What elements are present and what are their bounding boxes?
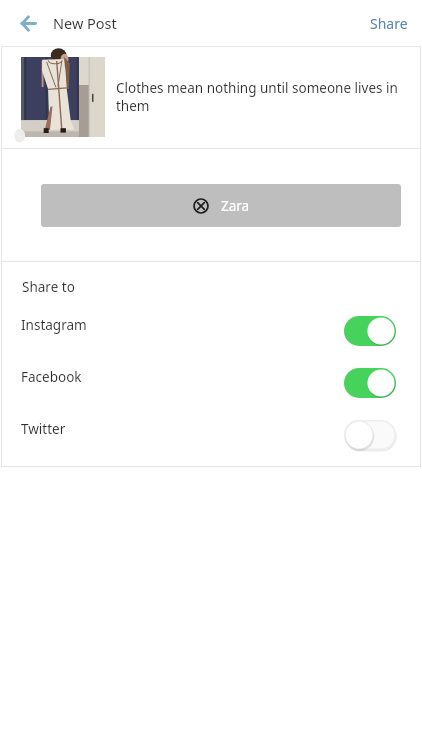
button[interactable]: Facebook	[1, 357, 421, 409]
staticText: Instagram	[21, 316, 87, 334]
staticText: New Post	[53, 13, 117, 33]
button[interactable]: Instagram	[1, 305, 421, 357]
button[interactable]: Clothes mean nothing until someone lives…	[1, 46, 421, 148]
staticText: Twitter	[21, 420, 66, 438]
staticText: Zara	[221, 197, 250, 215]
staticText: Share to	[22, 278, 75, 296]
button[interactable]: Zara	[41, 184, 401, 227]
button[interactable]: Back	[12, 7, 44, 39]
staticText: Share	[370, 14, 408, 33]
staticText: Clothes mean nothing until someone lives…	[116, 79, 407, 115]
button[interactable]: Share	[354, 6, 422, 41]
button[interactable]: Twitter	[1, 409, 421, 461]
staticText: Facebook	[21, 368, 82, 386]
